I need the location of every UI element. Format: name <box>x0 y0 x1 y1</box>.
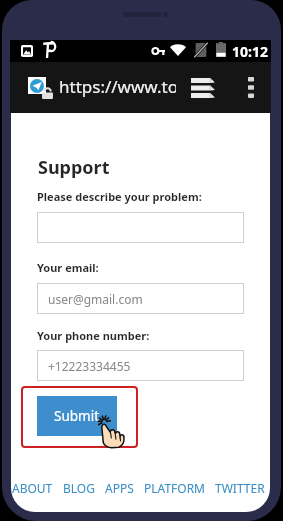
button[interactable]: Tabs <box>186 71 220 104</box>
button[interactable]: Submit <box>37 396 117 436</box>
staticText: +12223334455 <box>48 358 131 374</box>
button[interactable]: BLOG <box>63 480 95 496</box>
staticText: user@gmail.com <box>48 291 143 307</box>
button[interactable]: TWITTER <box>215 480 265 496</box>
staticText: Support <box>38 155 110 180</box>
staticText: TWITTER <box>215 480 265 496</box>
staticText: Your email: <box>37 260 99 275</box>
staticText: APPS <box>105 480 134 496</box>
staticText: https://www.tor <box>59 75 176 98</box>
button[interactable]: More options <box>238 71 264 104</box>
staticText: PLATFORM <box>144 480 205 496</box>
staticText: 10:12 <box>232 42 268 61</box>
staticText: Your phone number: <box>37 328 150 343</box>
button[interactable]: PLATFORM <box>144 480 205 496</box>
staticText: ABOUT <box>12 480 53 496</box>
button[interactable]: APPS <box>105 480 134 496</box>
staticText: Submit <box>54 407 100 425</box>
staticText: BLOG <box>63 480 95 496</box>
staticText: Please describe your problem: <box>37 189 202 204</box>
button[interactable]: ABOUT <box>12 480 53 496</box>
